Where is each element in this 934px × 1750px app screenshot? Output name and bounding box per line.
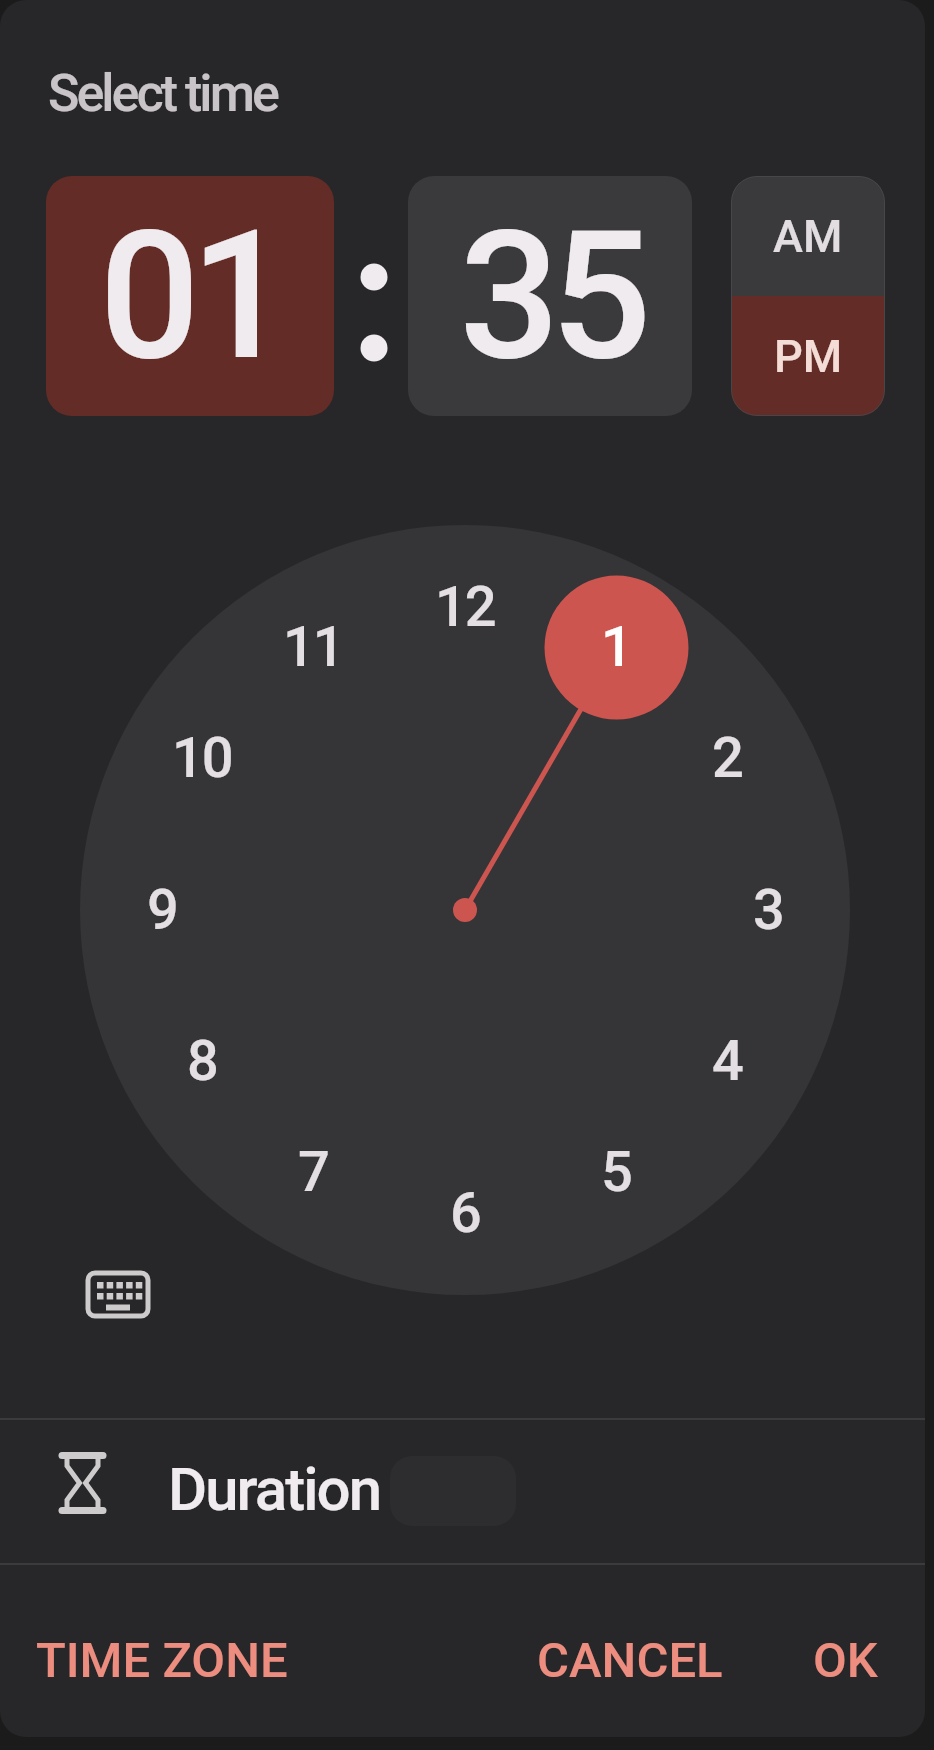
staticText: 7 (298, 1139, 328, 1205)
button[interactable]: 01 (46, 176, 334, 416)
staticText: CANCEL (537, 1632, 723, 1689)
staticText: Select time (48, 63, 277, 124)
button[interactable]: 35 (408, 176, 692, 416)
button[interactable]: Duration (0, 1420, 925, 1563)
button[interactable]: AM (731, 176, 885, 296)
staticText: 11 (283, 614, 343, 680)
staticText: 01 (99, 192, 282, 401)
staticText: 3 (753, 877, 783, 943)
button[interactable]: CANCEL (530, 1620, 730, 1700)
staticText: 4 (712, 1028, 742, 1094)
staticText: 2 (712, 725, 742, 791)
button[interactable]: TIME ZONE (20, 1620, 300, 1700)
staticText: 8 (187, 1028, 217, 1094)
staticText: PM (774, 330, 843, 383)
button[interactable]: OK (790, 1620, 900, 1700)
staticText: 5 (601, 1139, 631, 1205)
staticText: 1 (601, 614, 631, 680)
staticText: OK (813, 1632, 878, 1689)
staticText: 12 (435, 574, 495, 640)
staticText: 35 (459, 192, 642, 401)
staticText: 6 (450, 1180, 480, 1246)
staticText: Duration (168, 1454, 381, 1518)
staticText: 9 (147, 877, 177, 943)
staticText: TIME ZONE (36, 1632, 288, 1689)
button[interactable]: PM (731, 296, 885, 416)
staticText: AM (773, 210, 843, 263)
staticText: 10 (172, 725, 232, 791)
button[interactable] (84, 1269, 152, 1320)
